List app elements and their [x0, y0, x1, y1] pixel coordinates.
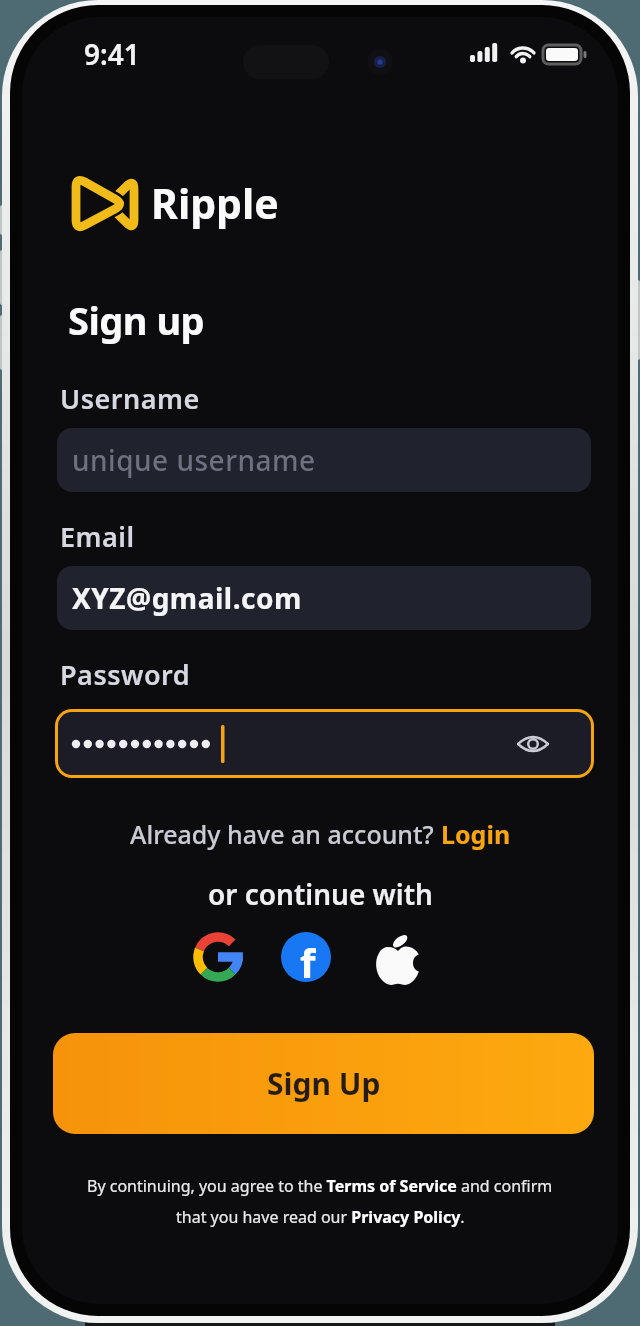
staticText: unique username — [72, 441, 316, 479]
button[interactable] — [373, 929, 423, 987]
staticText: Password — [60, 656, 191, 693]
button[interactable]: XYZ@gmail.com — [57, 566, 591, 630]
staticText: 9:41 — [84, 35, 140, 73]
button[interactable] — [55, 709, 594, 778]
button[interactable]: By continuing, you agree to the Terms of… — [87, 1175, 553, 1197]
staticText: Sign Up — [267, 1063, 381, 1104]
staticText: Email — [60, 518, 135, 555]
staticText: Username — [60, 380, 200, 417]
staticText: Already have an account? — [130, 817, 441, 851]
button[interactable]: unique username — [57, 428, 591, 492]
staticText: Sign up — [68, 294, 205, 346]
staticText: f — [300, 935, 316, 982]
staticText: XYZ@gmail.com — [72, 579, 302, 617]
button[interactable]: that you have read our Privacy Policy. — [176, 1206, 465, 1228]
button[interactable] — [193, 932, 243, 982]
button[interactable]: Login — [441, 817, 511, 851]
button[interactable]: f — [281, 932, 331, 982]
button[interactable]: Sign Up — [53, 1033, 594, 1134]
staticText: or continue with — [208, 875, 433, 913]
staticText: Ripple — [151, 175, 279, 231]
